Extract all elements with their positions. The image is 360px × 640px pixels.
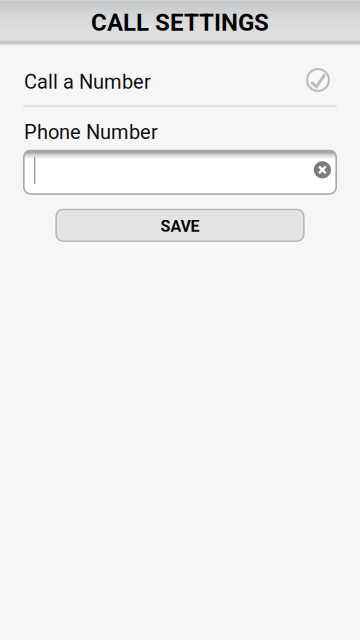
staticText: Phone Number bbox=[24, 120, 158, 144]
button[interactable]: Call a Number bbox=[0, 45, 360, 105]
staticText: Call a Number bbox=[24, 70, 151, 94]
staticText: SAVE bbox=[160, 217, 199, 236]
button[interactable]: Phone number text field bbox=[23, 150, 337, 195]
button[interactable]: Clear phone number bbox=[314, 164, 331, 181]
button[interactable]: SAVE bbox=[55, 209, 304, 242]
staticText: CALL SETTINGS bbox=[91, 8, 269, 36]
